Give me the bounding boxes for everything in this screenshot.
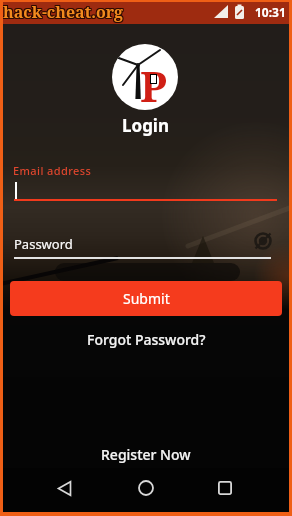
button[interactable] xyxy=(138,480,154,496)
staticText: hack-cheat.org xyxy=(2,2,123,24)
staticText: Password xyxy=(14,235,73,253)
button[interactable] xyxy=(252,231,274,251)
button[interactable]: Submit xyxy=(10,281,282,316)
staticText: hack-cheat.org xyxy=(3,1,124,23)
button[interactable]: Register Now xyxy=(101,445,191,464)
staticText: hack-cheat.org xyxy=(4,1,125,23)
staticText: hack-cheat.org xyxy=(4,2,125,24)
staticText: Login xyxy=(122,114,170,137)
staticText: hack-cheat.org xyxy=(2,0,123,22)
button[interactable] xyxy=(218,481,232,495)
staticText: hack-cheat.org xyxy=(3,2,124,24)
staticText: Register Now xyxy=(101,445,191,464)
button[interactable]: Forgot Password? xyxy=(87,330,206,349)
staticText: Forgot Password? xyxy=(87,330,206,349)
staticText: hack-cheat.org xyxy=(2,1,123,23)
staticText: Submit xyxy=(123,289,170,308)
button[interactable] xyxy=(57,481,73,497)
staticText: Email address xyxy=(13,163,92,178)
staticText: hack-cheat.org xyxy=(3,0,124,22)
staticText: 10:31 xyxy=(255,4,286,20)
staticText: hack-cheat.org xyxy=(4,0,125,22)
staticText: P xyxy=(140,57,167,110)
